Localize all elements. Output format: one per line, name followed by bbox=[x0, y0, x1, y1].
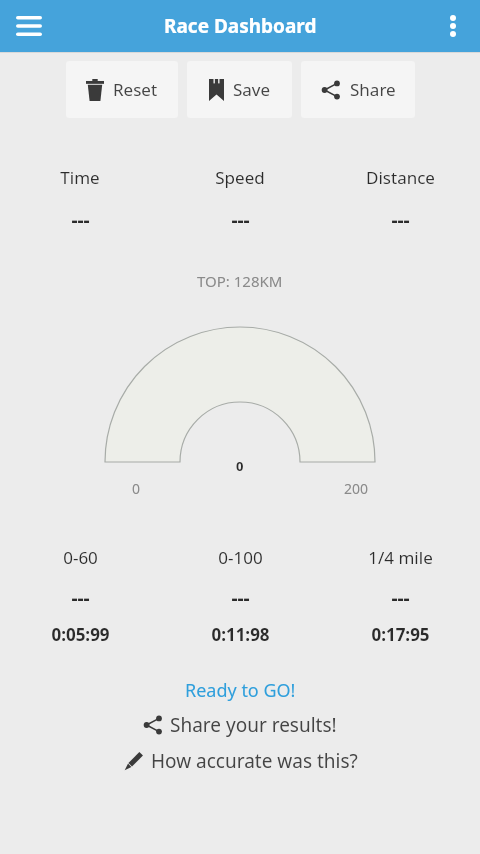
staticText: --- bbox=[231, 585, 250, 611]
button[interactable]: How accurate was this? bbox=[115, 746, 366, 776]
staticText: --- bbox=[71, 585, 90, 611]
staticText: 0:17:95 bbox=[371, 623, 430, 646]
staticText: --- bbox=[391, 585, 410, 611]
staticText: Ready to GO! bbox=[185, 678, 296, 703]
button[interactable]: Ready to GO! bbox=[175, 676, 306, 705]
staticText: Race Dashboard bbox=[164, 13, 317, 39]
staticText: 200 bbox=[344, 479, 369, 498]
staticText: Distance bbox=[366, 166, 435, 189]
staticText: 0 bbox=[236, 457, 244, 475]
staticText: 1/4 mile bbox=[368, 546, 433, 569]
staticText: Share your results! bbox=[170, 712, 337, 738]
button[interactable]: Open navigation menu bbox=[10, 7, 48, 45]
staticText: Save bbox=[233, 78, 271, 101]
button[interactable]: Share bbox=[301, 61, 415, 118]
staticText: 0-100 bbox=[218, 546, 263, 569]
staticText: 0:11:98 bbox=[211, 623, 270, 646]
button[interactable]: Save bbox=[187, 61, 292, 118]
button[interactable]: More options bbox=[434, 7, 472, 45]
staticText: 0:05:99 bbox=[51, 623, 110, 646]
staticText: --- bbox=[71, 207, 90, 233]
staticText: How accurate was this? bbox=[151, 748, 358, 774]
staticText: --- bbox=[391, 207, 410, 233]
staticText: Speed bbox=[215, 166, 265, 189]
staticText: Reset bbox=[113, 78, 158, 101]
button[interactable]: Share your results! bbox=[135, 710, 345, 740]
staticText: 0 bbox=[132, 479, 141, 498]
staticText: Time bbox=[60, 166, 100, 189]
staticText: Share bbox=[350, 78, 396, 101]
staticText: --- bbox=[231, 207, 250, 233]
staticText: 0-60 bbox=[63, 546, 98, 569]
staticText: TOP: 128KM bbox=[197, 271, 283, 291]
button[interactable]: Reset bbox=[66, 61, 178, 118]
